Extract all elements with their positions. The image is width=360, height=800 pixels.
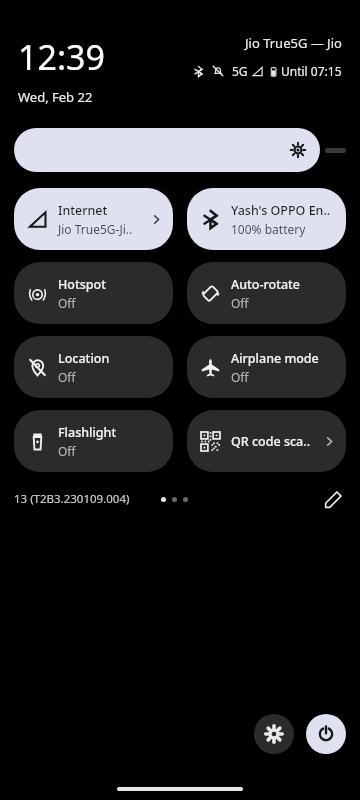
button[interactable]: Auto-rotate [187,262,346,324]
staticText: Jio True5G — Jio [245,34,342,52]
staticText: 5G [232,63,248,79]
staticText: Off [231,369,249,385]
button[interactable]: Location [14,336,173,398]
staticText: Off [58,369,76,385]
button[interactable]: QR code sca.. [187,410,346,472]
button[interactable]: Edit tiles [320,486,346,512]
staticText: 100% battery [231,221,306,237]
button[interactable]: Hotspot [14,262,173,324]
button[interactable]: Brightness [14,128,320,172]
staticText: Airplane mode [231,350,319,367]
staticText: Yash's OPPO En.. [231,202,331,219]
staticText: Jio True5G-Ji.. [58,221,133,237]
staticText: QR code sca.. [231,433,311,450]
staticText: 13 (T2B3.230109.004) [14,491,130,507]
staticText: Wed, Feb 22 [18,88,93,106]
staticText: Location [58,350,110,367]
staticText: Flashlight [58,424,117,441]
button[interactable]: Settings [254,714,294,754]
button[interactable]: Airplane mode [187,336,346,398]
button[interactable]: Internet [14,188,173,250]
staticText: Off [58,295,76,311]
button[interactable]: Yash's OPPO En.. [187,188,346,250]
button[interactable]: Flashlight [14,410,173,472]
staticText: 12:39 [18,34,105,80]
staticText: Internet [58,202,108,219]
staticText: Off [58,443,76,459]
staticText: Auto-rotate [231,276,301,293]
staticText: Until 07:15 [281,63,342,79]
button[interactable]: Power [306,714,346,754]
staticText: Hotspot [58,276,107,293]
staticText: Off [231,295,249,311]
